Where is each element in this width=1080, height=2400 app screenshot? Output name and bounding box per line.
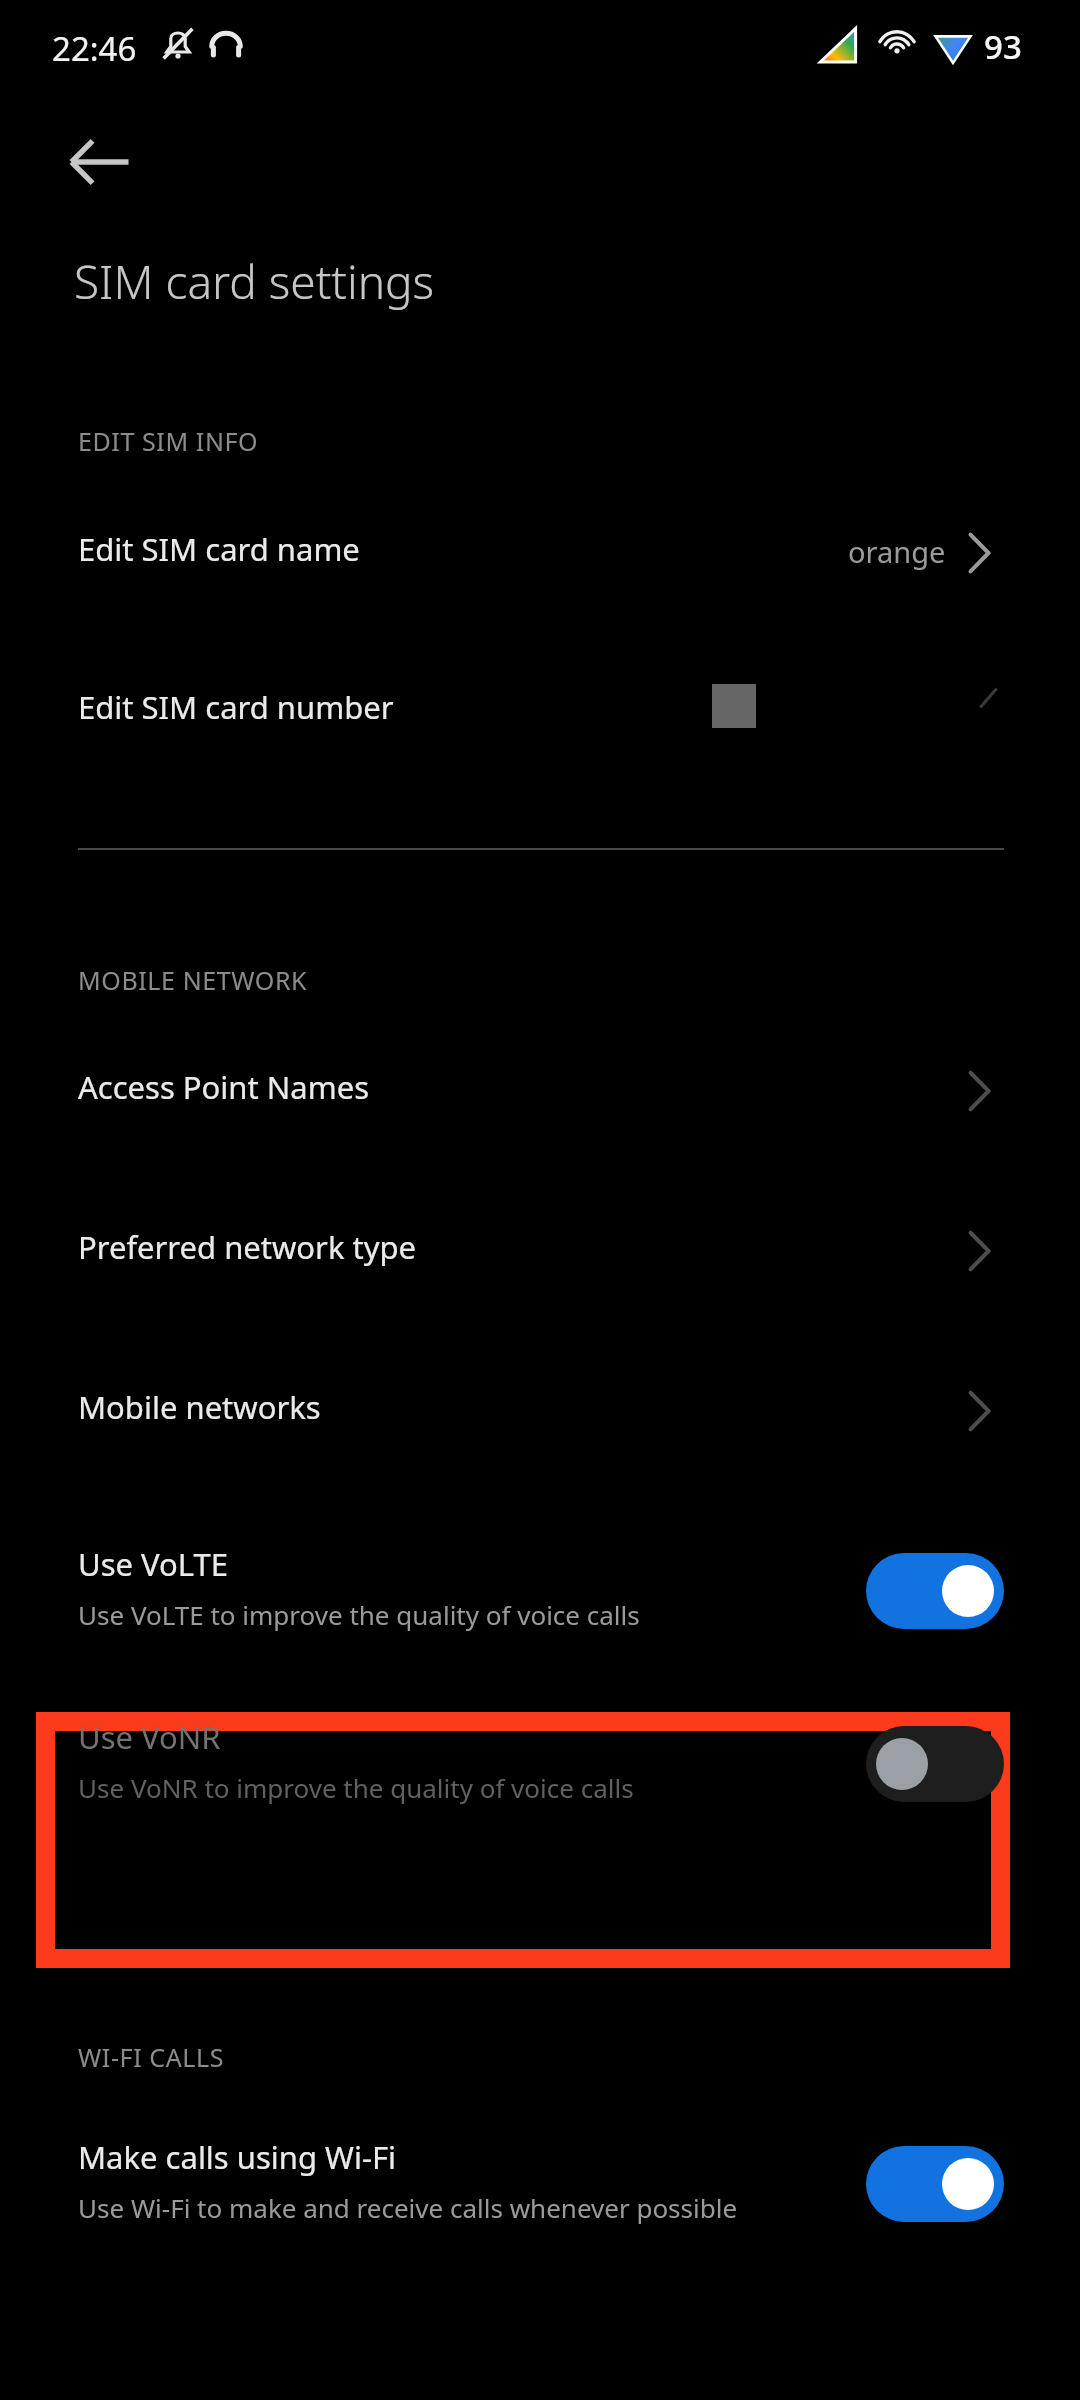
staticText: MOBILE NETWORK: [78, 963, 308, 997]
staticText: Preferred network type: [78, 1226, 417, 1268]
staticText: Access Point Names: [78, 1066, 369, 1108]
staticText: SIM card settings: [74, 250, 435, 313]
button[interactable]: Edit SIM card number: [0, 662, 1080, 812]
staticText: Edit SIM card number: [78, 686, 394, 728]
button[interactable]: Make calls using Wi-Fi: [0, 2110, 1080, 2270]
button[interactable]: Use VoLTE: [0, 1517, 1080, 1677]
staticText: Use VoLTE: [78, 1543, 228, 1585]
staticText: Use VoLTE to improve the quality of voic…: [78, 1597, 640, 1632]
staticText: WI-FI CALLS: [78, 2040, 225, 2074]
staticText: Edit SIM card name: [78, 528, 360, 570]
staticText: 93: [984, 24, 1022, 69]
button[interactable]: Preferred network type: [0, 1202, 1080, 1342]
staticText: Use VoNR to improve the quality of voice…: [78, 1770, 634, 1805]
staticText: Use VoNR: [78, 1716, 221, 1758]
staticText: Mobile networks: [78, 1386, 321, 1428]
staticText: Use Wi-Fi to make and receive calls when…: [78, 2190, 738, 2225]
button[interactable]: Edit SIM card name: [0, 504, 1080, 654]
button[interactable]: Back: [56, 118, 144, 206]
staticText: 22:46: [52, 26, 137, 71]
staticText: Make calls using Wi-Fi: [78, 2136, 396, 2178]
staticText: EDIT SIM INFO: [78, 424, 259, 458]
button[interactable]: Mobile networks: [0, 1362, 1080, 1502]
staticText: orange: [848, 532, 946, 571]
button[interactable]: Use VoNR: [0, 1690, 1080, 1850]
button[interactable]: Access Point Names: [0, 1042, 1080, 1182]
